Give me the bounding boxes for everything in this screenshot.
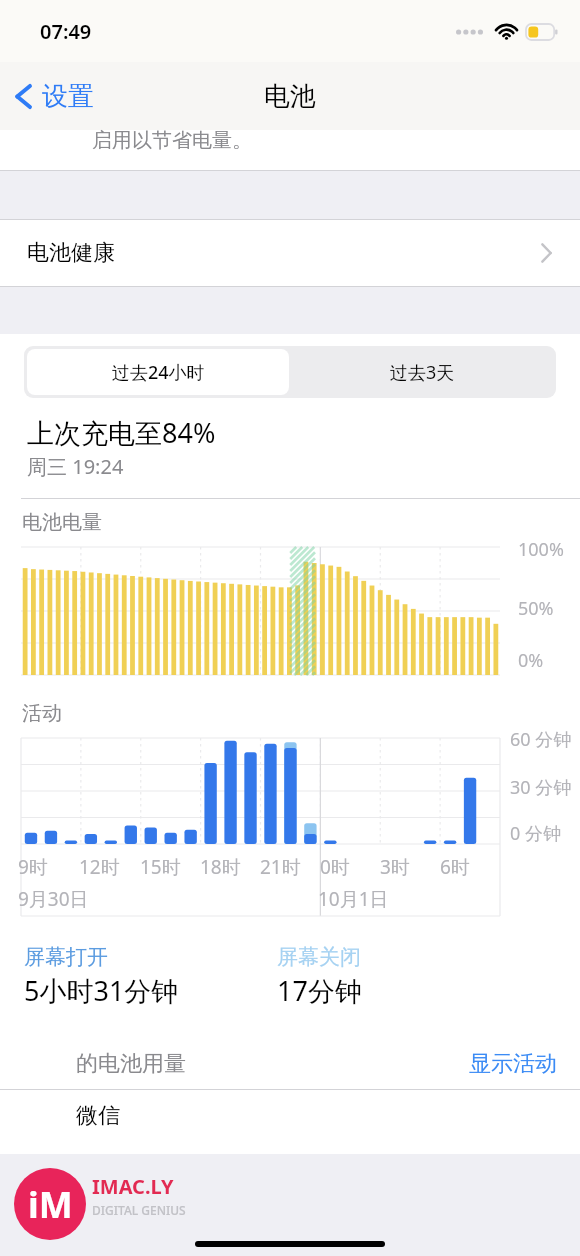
staticText: DIGITAL GENIUS xyxy=(92,1202,186,1218)
staticText: 屏幕打开 xyxy=(24,944,108,970)
staticText: 50% xyxy=(518,596,554,621)
staticText: 30 分钟 xyxy=(510,775,572,800)
staticText: 启用以节省电量。 xyxy=(92,128,252,153)
staticText: 12时 xyxy=(79,854,120,880)
staticText: 电池 xyxy=(264,80,316,113)
staticText: 5小时31分钟 xyxy=(24,972,179,1009)
staticText: 18时 xyxy=(200,854,241,880)
staticText: 周三 19:24 xyxy=(27,453,124,480)
staticText: 21时 xyxy=(260,854,301,880)
staticText: 活动 xyxy=(22,701,62,726)
staticText: 电池健康 xyxy=(27,239,115,267)
staticText: 微信 xyxy=(76,1102,120,1130)
staticText: 10月1日 xyxy=(318,886,389,912)
staticText: 电池电量 xyxy=(22,510,102,535)
staticText: 的电池用量 xyxy=(76,1050,186,1078)
staticText: 100% xyxy=(518,537,564,562)
staticText: iM xyxy=(28,1180,73,1229)
staticText: 过去3天 xyxy=(390,360,455,385)
button[interactable]: 设置 xyxy=(0,74,106,119)
staticText: 9月30日 xyxy=(18,886,89,912)
button[interactable]: 过去3天 xyxy=(290,348,554,396)
staticText: 过去24小时 xyxy=(112,360,205,385)
staticText: 15时 xyxy=(140,854,181,880)
button[interactable]: 过去24小时 xyxy=(27,349,289,395)
staticText: 6时 xyxy=(440,854,470,880)
staticText: 设置 xyxy=(42,80,94,113)
staticText: 0% xyxy=(518,648,544,673)
staticText: 17分钟 xyxy=(277,972,362,1009)
staticText: 07:49 xyxy=(40,18,92,45)
button[interactable]: 电池健康 xyxy=(0,220,580,286)
staticText: 0 分钟 xyxy=(510,821,561,846)
button[interactable]: 显示活动 xyxy=(466,1047,560,1081)
staticText: 60 分钟 xyxy=(510,727,572,752)
staticText: 0时 xyxy=(320,854,350,880)
staticText: 显示活动 xyxy=(469,1050,557,1078)
staticText: 上次充电至84% xyxy=(27,414,216,451)
staticText: 屏幕关闭 xyxy=(277,944,361,970)
staticText: 9时 xyxy=(18,854,48,880)
staticText: IMAC.LY xyxy=(92,1173,174,1200)
staticText: 3时 xyxy=(380,854,410,880)
